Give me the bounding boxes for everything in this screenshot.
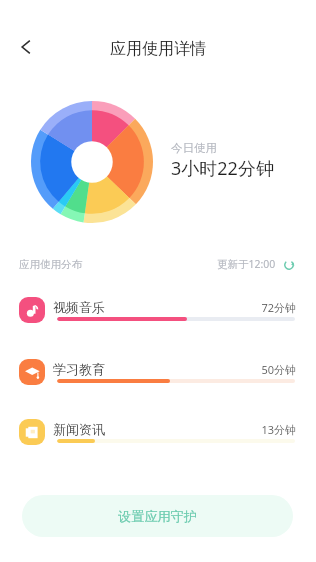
staticText: 50分钟	[196, 362, 296, 377]
staticText: 应用使用详情	[0, 39, 316, 59]
staticText: 72分钟	[196, 300, 296, 315]
button[interactable]: Back	[8, 29, 44, 65]
button[interactable]: 新闻资讯	[0, 419, 316, 445]
staticText: 3小时22分钟	[171, 156, 274, 181]
button[interactable]: 设置应用守护	[22, 495, 293, 537]
button[interactable]: 学习教育	[0, 359, 316, 385]
staticText: 更新于12:00	[217, 257, 276, 271]
button[interactable]: Refresh	[284, 260, 294, 270]
button[interactable]: 视频音乐	[0, 297, 316, 323]
staticText: 今日使用	[171, 141, 217, 155]
staticText: 设置应用守护	[118, 508, 198, 525]
staticText: 新闻资讯	[53, 421, 105, 437]
staticText: 13分钟	[196, 422, 296, 437]
staticText: 视频音乐	[53, 299, 105, 315]
staticText: 应用使用分布	[19, 258, 82, 271]
staticText: 学习教育	[53, 361, 105, 377]
